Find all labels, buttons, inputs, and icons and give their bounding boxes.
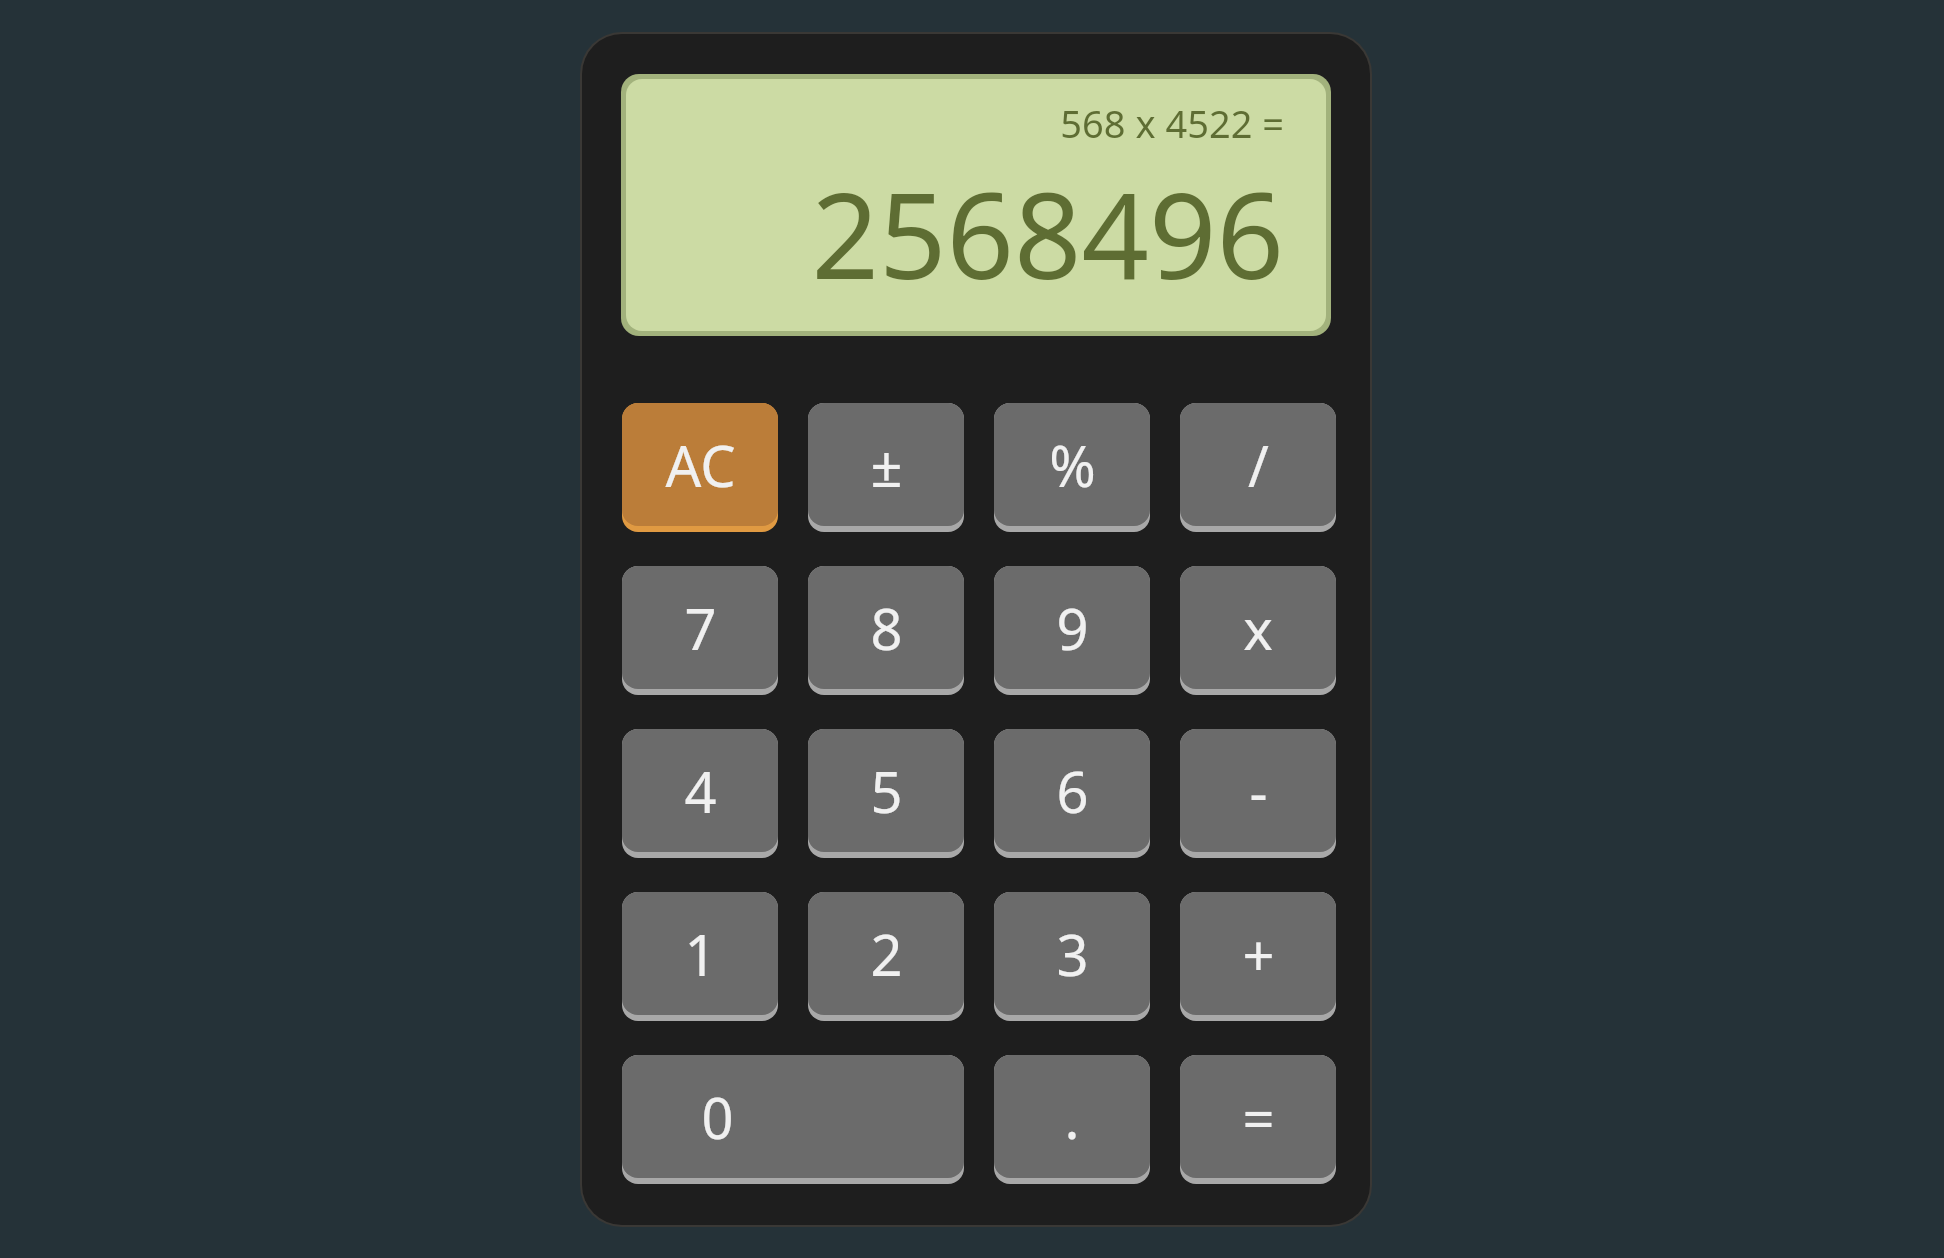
button[interactable]: 4 xyxy=(622,729,778,858)
button[interactable]: 8 xyxy=(808,566,964,695)
button[interactable]: Percent xyxy=(994,403,1150,532)
staticText: 3 xyxy=(1056,916,1089,992)
button[interactable]: AC xyxy=(622,403,778,532)
staticText: 0 xyxy=(701,1079,734,1155)
staticText: 4 xyxy=(684,753,717,829)
button[interactable]: 0 xyxy=(622,1055,964,1184)
button[interactable]: Toggle sign xyxy=(808,403,964,532)
button[interactable]: 5 xyxy=(808,729,964,858)
staticText: . xyxy=(1064,1079,1080,1155)
button[interactable]: 3 xyxy=(994,892,1150,1021)
staticText: 2 xyxy=(870,916,903,992)
staticText: % xyxy=(1049,427,1096,503)
button[interactable]: Equals xyxy=(1180,1055,1336,1184)
button[interactable]: 6 xyxy=(994,729,1150,858)
button[interactable]: Decimal point xyxy=(994,1055,1150,1184)
button[interactable]: 1 xyxy=(622,892,778,1021)
staticText: 9 xyxy=(1056,590,1089,666)
button[interactable]: 9 xyxy=(994,566,1150,695)
button[interactable]: Add xyxy=(1180,892,1336,1021)
button[interactable]: 7 xyxy=(622,566,778,695)
staticText: 5 xyxy=(870,753,903,829)
staticText: ± xyxy=(870,427,903,503)
staticText: 7 xyxy=(684,590,717,666)
staticText: 8 xyxy=(870,590,903,666)
staticText: 568 x 4522 = xyxy=(1060,97,1284,149)
staticText: 6 xyxy=(1056,753,1089,829)
button[interactable]: Subtract xyxy=(1180,729,1336,858)
staticText: 2568496 xyxy=(811,153,1284,314)
staticText: AC xyxy=(665,427,736,503)
staticText: 1 xyxy=(684,916,717,992)
staticText: / xyxy=(1248,427,1269,503)
button[interactable]: 2 xyxy=(808,892,964,1021)
staticText: - xyxy=(1249,753,1268,829)
staticText: + xyxy=(1242,916,1275,992)
staticText: x xyxy=(1243,590,1273,666)
button[interactable]: Multiply xyxy=(1180,566,1336,695)
button[interactable]: Divide xyxy=(1180,403,1336,532)
staticText: = xyxy=(1242,1079,1275,1155)
